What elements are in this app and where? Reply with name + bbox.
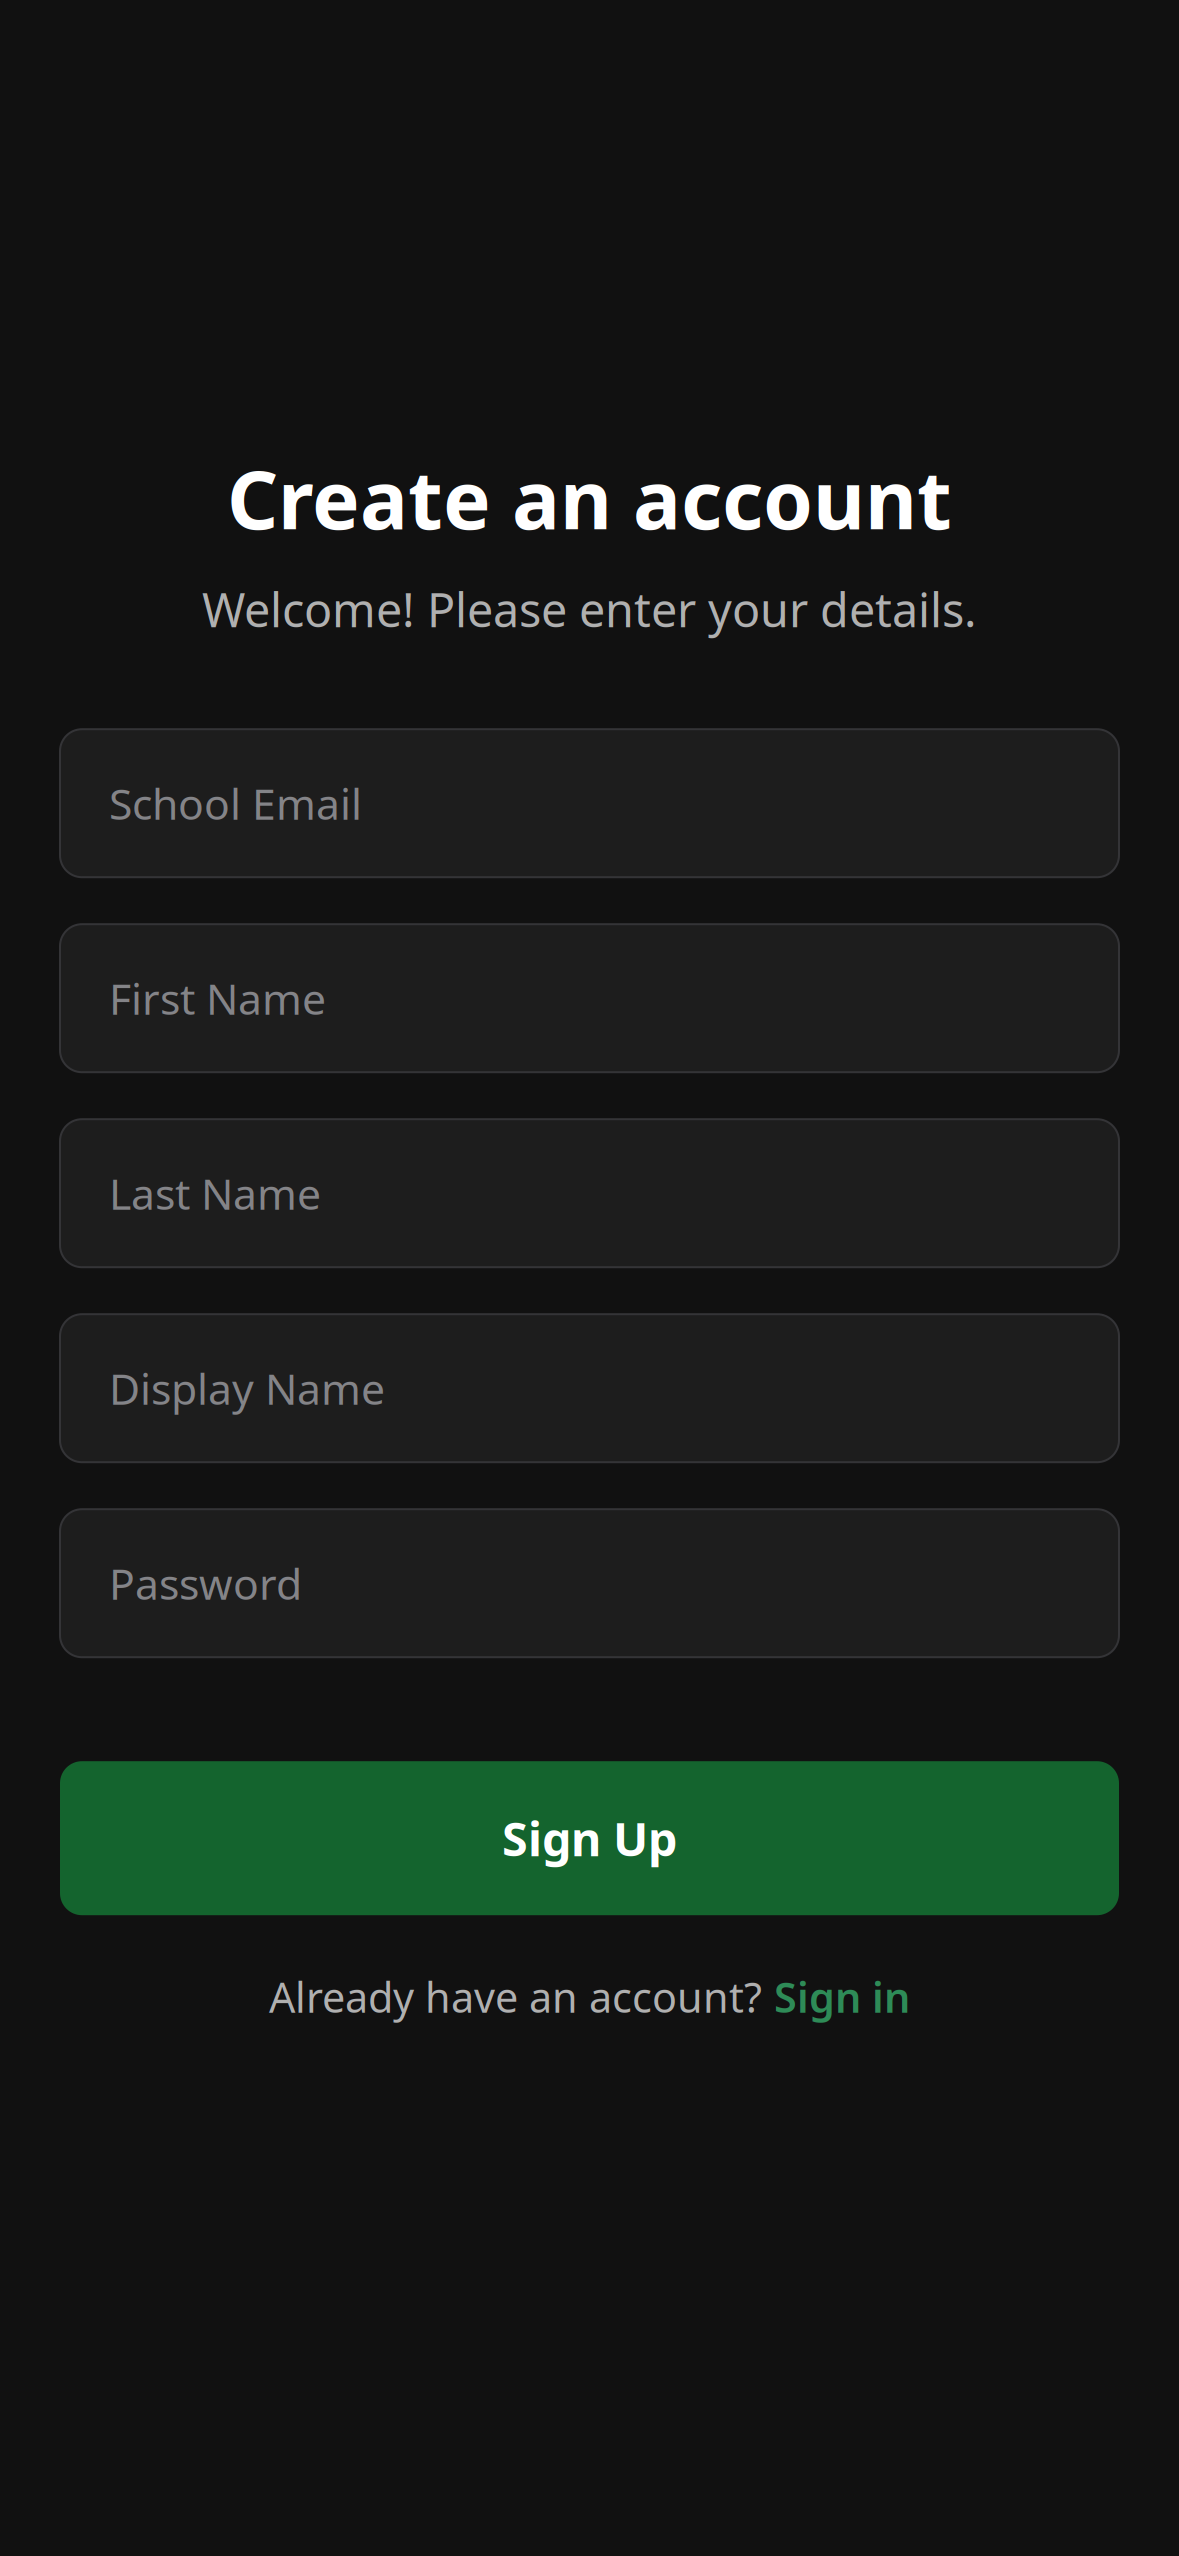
staticText: School Email (109, 775, 362, 832)
staticText: Password (109, 1555, 302, 1612)
staticText: Sign Up (502, 1807, 677, 1869)
button[interactable]: School Email (60, 729, 1119, 877)
button[interactable]: Sign Up (60, 1761, 1119, 1915)
staticText: Sign in (774, 1969, 910, 2024)
staticText: Already have an account? (269, 1969, 762, 2024)
button[interactable]: First Name (60, 924, 1119, 1072)
staticText: First Name (109, 970, 326, 1027)
button[interactable]: Display Name (60, 1314, 1119, 1462)
button[interactable]: Password (60, 1509, 1119, 1657)
staticText: Last Name (109, 1165, 321, 1222)
staticText: Create an account (227, 445, 952, 551)
button[interactable]: Already have an account? (269, 1969, 910, 2024)
staticText: Display Name (109, 1360, 385, 1417)
staticText: Welcome! Please enter your details. (202, 578, 977, 640)
button[interactable]: Last Name (60, 1119, 1119, 1267)
